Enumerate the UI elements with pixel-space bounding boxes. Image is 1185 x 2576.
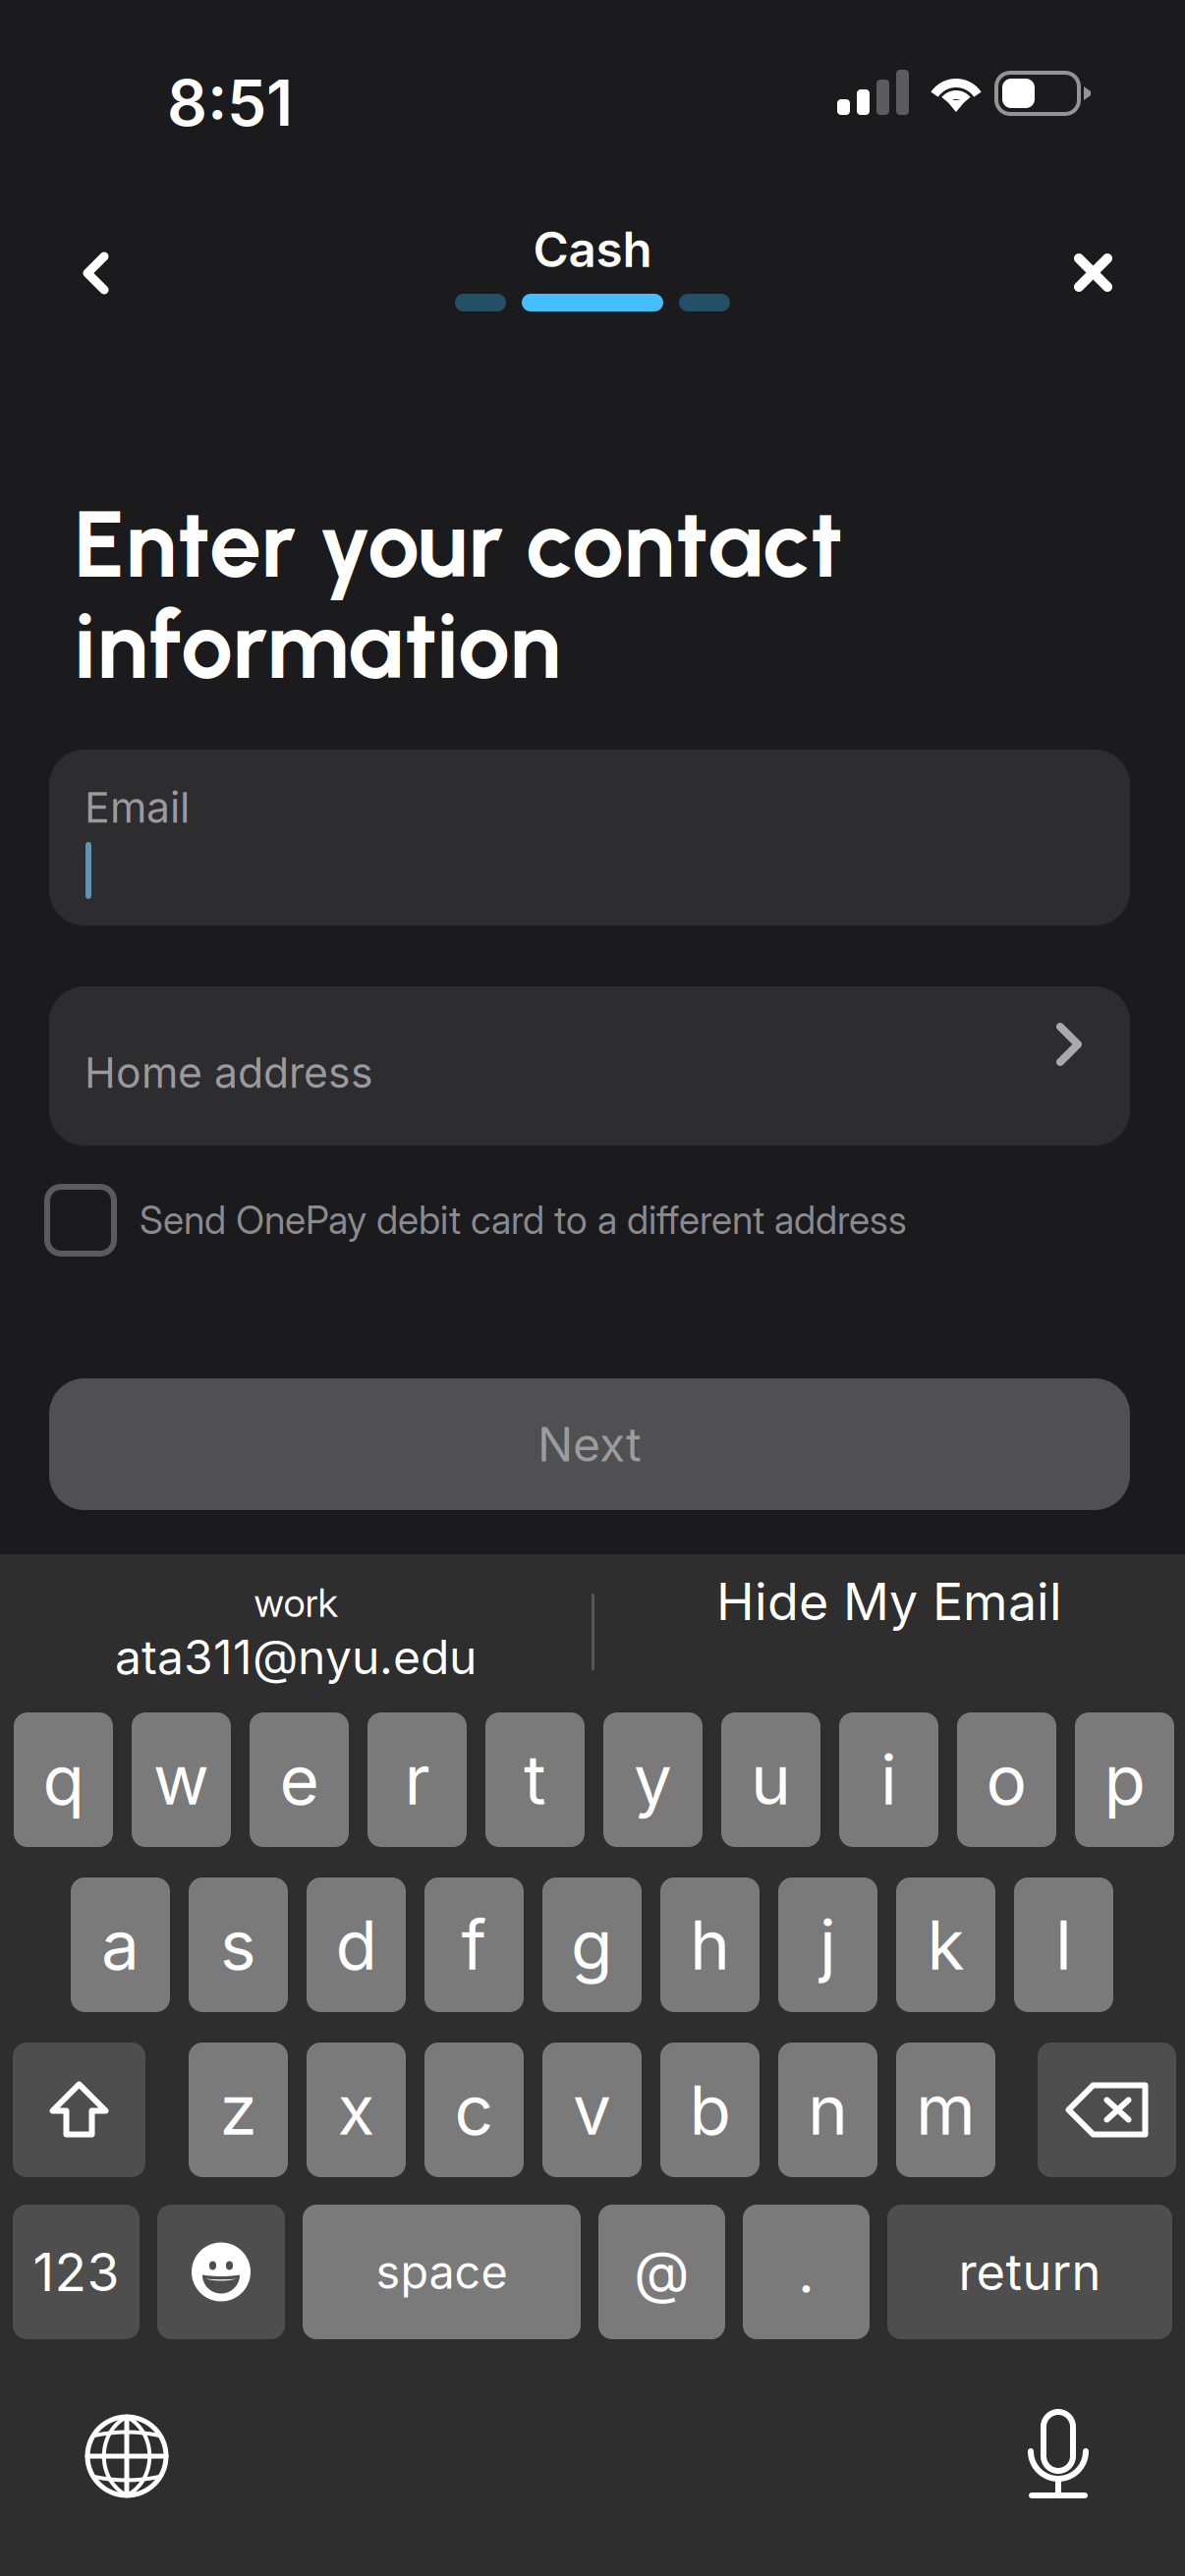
button[interactable]: Dictation <box>994 2392 1122 2520</box>
staticText: f <box>461 1904 487 1986</box>
button[interactable]: a <box>71 1877 170 2012</box>
button[interactable]: Emoji <box>157 2205 285 2339</box>
staticText: z <box>220 2069 257 2151</box>
button[interactable]: e <box>250 1712 349 1847</box>
staticText: k <box>927 1904 964 1986</box>
staticText: x <box>338 2069 375 2151</box>
button[interactable]: Change keyboard <box>63 2392 191 2520</box>
staticText: d <box>336 1904 377 1986</box>
button[interactable]: r <box>367 1712 467 1847</box>
button[interactable]: s <box>189 1877 288 2012</box>
staticText: s <box>220 1904 256 1986</box>
button[interactable]: . <box>743 2205 870 2339</box>
button[interactable]: Email <box>49 750 1130 925</box>
button[interactable]: c <box>424 2043 524 2177</box>
button[interactable]: Back <box>4 186 112 294</box>
button[interactable]: space <box>303 2205 581 2339</box>
staticText: y <box>634 1739 672 1821</box>
staticText: j <box>819 1904 836 1986</box>
button[interactable]: q <box>14 1712 113 1847</box>
staticText: l <box>1055 1904 1072 1986</box>
button[interactable]: y <box>603 1712 703 1847</box>
button[interactable]: Next <box>49 1378 1130 1510</box>
button[interactable]: Hide My Email <box>596 1538 1182 1665</box>
button[interactable]: t <box>485 1712 585 1847</box>
button[interactable]: b <box>660 2043 760 2177</box>
staticText: m <box>916 2069 976 2151</box>
staticText: u <box>751 1739 791 1821</box>
staticText: 8:51 <box>167 65 293 141</box>
staticText: g <box>571 1904 613 1986</box>
staticText: p <box>1104 1739 1145 1821</box>
staticText: . <box>798 2237 815 2307</box>
button[interactable]: 123 <box>13 2205 140 2339</box>
button[interactable]: d <box>307 1877 406 2012</box>
button[interactable]: return <box>887 2205 1172 2339</box>
button[interactable]: u <box>721 1712 820 1847</box>
staticText: space <box>376 2244 508 2300</box>
button[interactable]: g <box>542 1877 642 2012</box>
button[interactable]: Close <box>1005 185 1113 293</box>
staticText: q <box>43 1739 84 1821</box>
button[interactable]: work <box>3 1579 589 1699</box>
button[interactable]: n <box>778 2043 877 2177</box>
staticText: n <box>808 2069 848 2151</box>
staticText: work <box>254 1579 338 1626</box>
staticText: t <box>524 1739 546 1821</box>
staticText: Home address <box>85 1047 373 1098</box>
staticText: ata311@nyu.edu <box>115 1628 477 1685</box>
button[interactable]: Shift <box>13 2043 145 2177</box>
staticText: Next <box>537 1416 642 1473</box>
staticText: information <box>74 589 561 701</box>
button[interactable]: Send OnePay debit card to a different ad… <box>47 1181 1138 1260</box>
button[interactable]: w <box>132 1712 231 1847</box>
button[interactable]: p <box>1075 1712 1174 1847</box>
staticText: e <box>280 1739 319 1821</box>
staticText: return <box>959 2242 1101 2302</box>
staticText: v <box>573 2069 611 2151</box>
staticText: @ <box>634 2237 690 2307</box>
button[interactable]: k <box>896 1877 995 2012</box>
button[interactable]: z <box>189 2043 288 2177</box>
button[interactable]: v <box>542 2043 642 2177</box>
staticText: h <box>690 1904 730 1986</box>
staticText: w <box>153 1739 209 1821</box>
button[interactable]: Home address <box>49 986 1130 1146</box>
button[interactable]: Delete <box>1038 2043 1176 2177</box>
staticText: Hide My Email <box>716 1570 1062 1632</box>
staticText: Enter your contact <box>74 488 843 600</box>
staticText: Cash <box>533 220 652 279</box>
staticText: Send OnePay debit card to a different ad… <box>140 1197 907 1243</box>
staticText: Email <box>85 782 190 833</box>
button[interactable]: x <box>307 2043 406 2177</box>
staticText: a <box>101 1904 140 1986</box>
button[interactable]: i <box>839 1712 938 1847</box>
button[interactable]: o <box>957 1712 1056 1847</box>
button[interactable]: f <box>424 1877 524 2012</box>
button[interactable]: @ <box>598 2205 725 2339</box>
staticText: 123 <box>33 2240 119 2304</box>
button[interactable]: j <box>778 1877 877 2012</box>
staticText: b <box>689 2069 731 2151</box>
staticText: r <box>404 1739 430 1821</box>
staticText: i <box>880 1739 897 1821</box>
staticText: c <box>454 2069 494 2151</box>
button[interactable]: m <box>896 2043 995 2177</box>
button[interactable]: h <box>660 1877 760 2012</box>
button[interactable]: l <box>1014 1877 1113 2012</box>
staticText: o <box>986 1739 1027 1821</box>
